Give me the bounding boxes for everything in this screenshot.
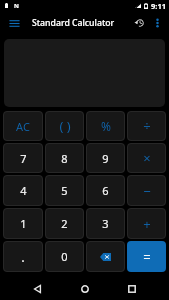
button[interactable]: Recents xyxy=(121,278,143,300)
button[interactable]: 8 xyxy=(45,143,84,173)
staticText: . xyxy=(21,248,25,266)
staticText: = xyxy=(143,248,151,266)
staticText: 8 xyxy=(61,151,68,166)
staticText: 7 xyxy=(20,151,27,166)
staticText: 3 xyxy=(102,216,109,231)
button[interactable]: 3 xyxy=(86,208,125,239)
staticText: 5 xyxy=(61,183,68,198)
button[interactable]: History xyxy=(131,13,149,33)
button[interactable]: 0 xyxy=(45,241,84,272)
button[interactable]: 7 xyxy=(3,143,43,173)
button[interactable]: Home xyxy=(74,278,96,300)
button[interactable]: More options xyxy=(149,13,165,33)
staticText: − xyxy=(143,182,151,200)
button[interactable]: Menu xyxy=(4,13,24,33)
button[interactable]: . xyxy=(3,241,43,272)
staticText: N xyxy=(14,2,19,10)
staticText: % xyxy=(101,118,111,134)
staticText: 4 xyxy=(20,183,27,198)
button[interactable]: 6 xyxy=(86,175,125,206)
staticText: 0 xyxy=(61,249,68,264)
button[interactable]: 5 xyxy=(45,175,84,206)
button[interactable]: AC xyxy=(3,111,43,141)
button[interactable]: ( ) xyxy=(45,111,84,141)
button[interactable]: − xyxy=(127,175,166,206)
button[interactable]: 4 xyxy=(3,175,43,206)
staticText: + xyxy=(143,215,151,233)
staticText: 9 xyxy=(102,151,109,166)
button[interactable]: 9 xyxy=(86,143,125,173)
staticText: ( ) xyxy=(59,117,71,135)
staticText: 1 xyxy=(20,216,27,231)
button[interactable]: 1 xyxy=(3,208,43,239)
staticText: 9:11 xyxy=(151,1,166,11)
staticText: AC xyxy=(16,119,30,134)
button[interactable]: 2 xyxy=(45,208,84,239)
staticText: × xyxy=(143,149,151,167)
staticText: 6 xyxy=(102,183,109,198)
staticText: 2 xyxy=(61,216,68,231)
staticText: Standard Calculator xyxy=(32,17,115,29)
button[interactable]: × xyxy=(127,143,166,173)
button[interactable]: ÷ xyxy=(127,111,166,141)
staticText: ÷ xyxy=(143,117,151,135)
button[interactable]: + xyxy=(127,208,166,239)
button[interactable]: Back xyxy=(26,278,48,300)
button[interactable]: = xyxy=(127,241,166,272)
button[interactable]: % xyxy=(86,111,125,141)
button[interactable]: Backspace xyxy=(86,241,125,272)
